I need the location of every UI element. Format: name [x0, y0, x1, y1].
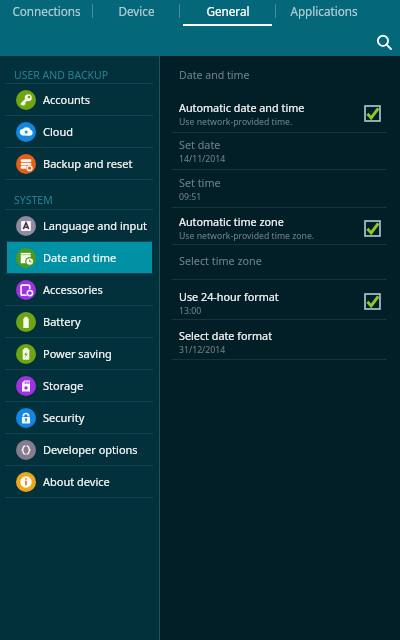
staticText: Use network-provided time.: [179, 116, 293, 128]
staticText: Accounts: [43, 92, 91, 107]
staticText: Battery: [43, 314, 81, 329]
button[interactable]: Select time zone: [160, 245, 400, 279]
staticText: About device: [43, 474, 110, 489]
staticText: 31/12/2014: [179, 344, 226, 356]
staticText: Date and time: [43, 250, 117, 265]
button[interactable]: Developer options: [7, 434, 152, 465]
staticText: Cloud: [43, 124, 74, 139]
button[interactable]: Language and input: [7, 210, 152, 241]
button[interactable]: Device: [93, 0, 179, 26]
button[interactable]: Select date format: [160, 320, 400, 359]
button[interactable]: Security: [7, 402, 152, 433]
button[interactable]: Use 24-hour format: [160, 280, 400, 319]
staticText: Automatic time zone: [179, 214, 284, 229]
staticText: USER AND BACKUP: [14, 68, 109, 82]
button[interactable]: Date and time: [7, 242, 152, 273]
button[interactable]: General: [180, 0, 275, 26]
staticText: General: [206, 3, 250, 19]
staticText: Set date: [179, 137, 221, 152]
staticText: Security: [43, 410, 85, 425]
button[interactable]: Accessories: [7, 274, 152, 305]
button[interactable]: Battery: [7, 306, 152, 337]
staticText: SYSTEM: [14, 193, 53, 207]
button[interactable]: Accounts: [7, 84, 152, 115]
button[interactable]: Set date: [160, 133, 400, 169]
staticText: Automatic date and time: [179, 100, 305, 115]
button[interactable]: Automatic time zone: [160, 208, 400, 244]
staticText: 09:51: [179, 191, 202, 203]
staticText: Power saving: [43, 346, 112, 361]
staticText: Storage: [43, 378, 84, 393]
staticText: Connections: [12, 3, 81, 19]
staticText: Set time: [179, 175, 221, 190]
button[interactable]: Backup and reset: [7, 148, 152, 179]
button[interactable]: Search: [370, 28, 398, 56]
button[interactable]: Storage: [7, 370, 152, 401]
button[interactable]: About device: [7, 466, 152, 497]
staticText: Device: [118, 3, 155, 19]
staticText: Select time zone: [179, 253, 262, 268]
staticText: Date and time: [179, 68, 250, 82]
staticText: Use 24-hour format: [179, 289, 279, 304]
button[interactable]: Set time: [160, 170, 400, 207]
staticText: Use network-provided time zone.: [179, 230, 315, 242]
button[interactable]: Power saving: [7, 338, 152, 369]
staticText: Language and input: [43, 218, 148, 233]
button[interactable]: Automatic date and time: [160, 90, 400, 132]
staticText: 13:00: [179, 305, 202, 317]
button[interactable]: Connections: [0, 0, 92, 26]
staticText: Accessories: [43, 282, 103, 297]
staticText: 14/11/2014: [179, 153, 226, 165]
staticText: Developer options: [43, 442, 138, 457]
staticText: Backup and reset: [43, 156, 133, 171]
staticText: Select date format: [179, 328, 273, 343]
button[interactable]: Cloud: [7, 116, 152, 147]
button[interactable]: Applications: [276, 0, 371, 26]
staticText: Applications: [290, 3, 358, 19]
